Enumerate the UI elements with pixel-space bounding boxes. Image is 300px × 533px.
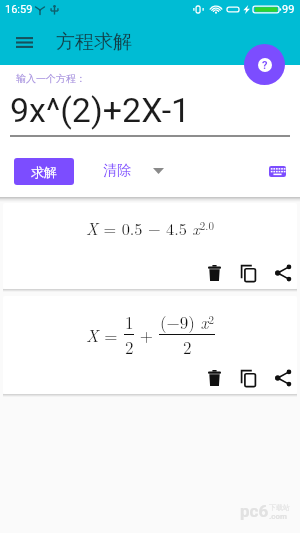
staticText: 方程求解: [56, 30, 132, 54]
staticText: 求解: [31, 164, 57, 180]
staticText: 下载站: [269, 503, 290, 512]
staticText: X =: [86, 323, 124, 347]
button[interactable]: 清除: [89, 156, 178, 186]
button[interactable]: X = 0.5 − 4.5 x2.0: [3, 203, 297, 289]
staticText: pc6: [240, 501, 269, 521]
staticText: 2: [125, 335, 134, 359]
staticText: 99: [282, 3, 295, 16]
staticText: X = 0.5 − 4.5 x2.0: [86, 217, 214, 240]
button[interactable]: Keyboard: [264, 158, 290, 184]
staticText: .com: [269, 512, 287, 521]
staticText: 9x^(2)+2X-1: [10, 90, 191, 130]
staticText: 16:59: [5, 3, 33, 16]
button[interactable]: Delete: [202, 261, 226, 285]
staticText: ?: [262, 59, 268, 72]
button[interactable]: Copy: [236, 261, 260, 285]
button[interactable]: 求解: [14, 158, 74, 185]
button[interactable]: Share: [271, 366, 295, 390]
button[interactable]: X =: [3, 296, 297, 394]
staticText: 输入一个方程：: [16, 72, 86, 85]
button[interactable]: Menu: [8, 26, 40, 58]
staticText: (−9) x2: [160, 310, 215, 334]
staticText: +: [134, 323, 159, 347]
staticText: 1: [125, 310, 134, 334]
button[interactable]: Help: [244, 44, 285, 85]
button[interactable]: Share: [271, 261, 295, 285]
staticText: 清除: [103, 162, 131, 180]
button[interactable]: Delete: [202, 366, 226, 390]
staticText: 2: [183, 335, 192, 359]
button[interactable]: Copy: [236, 366, 260, 390]
